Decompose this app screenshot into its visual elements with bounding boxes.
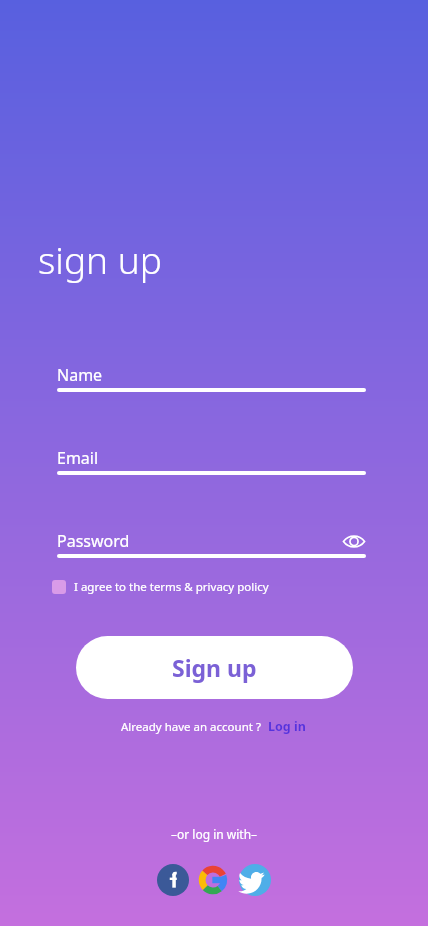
staticText: Sign up bbox=[172, 652, 257, 683]
button[interactable]: Sign in with Facebook bbox=[157, 864, 189, 896]
staticText: Email bbox=[57, 447, 99, 469]
button[interactable]: Password bbox=[57, 530, 366, 560]
staticText: Password bbox=[57, 530, 130, 552]
staticText: Log in bbox=[268, 718, 306, 735]
button[interactable]: Sign in with Google bbox=[197, 864, 229, 896]
button[interactable]: Sign in with Twitter bbox=[239, 864, 271, 896]
staticText: I agree to the terms & privacy policy bbox=[74, 579, 269, 595]
button[interactable]: Log in bbox=[266, 716, 308, 737]
staticText: –or log in with– bbox=[0, 826, 428, 842]
staticText: Name bbox=[57, 364, 103, 386]
button[interactable]: Email bbox=[57, 447, 366, 477]
staticText: Already have an account ? bbox=[121, 719, 261, 735]
button[interactable]: I agree to the terms & privacy policy bbox=[50, 576, 271, 598]
button[interactable]: Name bbox=[57, 364, 366, 394]
button[interactable]: Sign up bbox=[76, 636, 353, 699]
staticText: sign up bbox=[38, 234, 162, 284]
other: Show password bbox=[342, 534, 366, 549]
